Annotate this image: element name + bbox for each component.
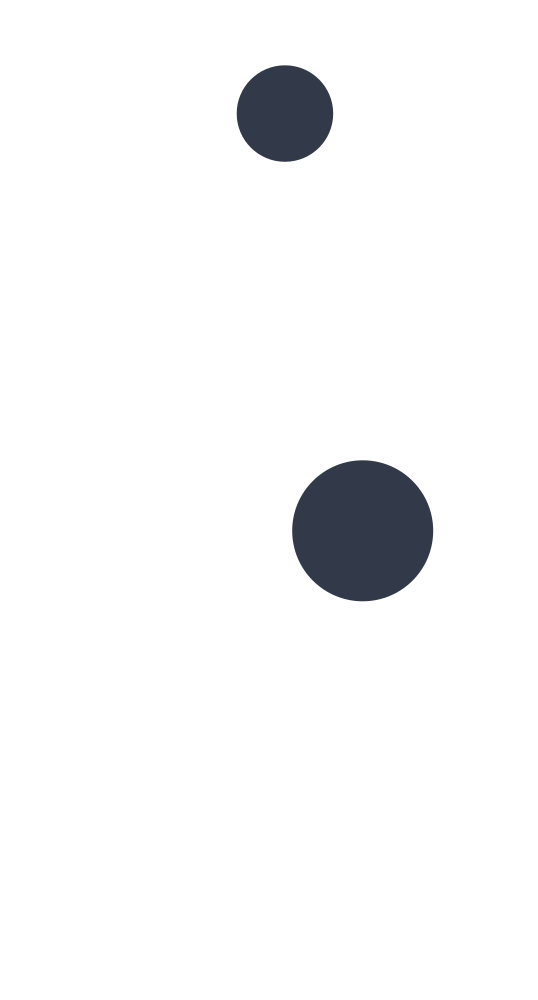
button[interactable]: Small dot [237, 65, 333, 162]
button[interactable]: Large dot [292, 460, 433, 601]
